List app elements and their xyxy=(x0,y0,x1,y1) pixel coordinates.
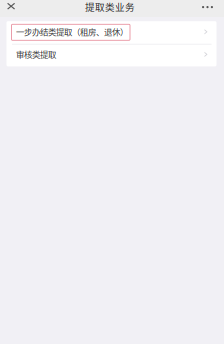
button[interactable]: Close xyxy=(0,0,21,17)
button[interactable]: More xyxy=(196,2,224,15)
staticText: 审核类提取 xyxy=(16,48,56,60)
staticText: 提取类业务 xyxy=(85,0,135,13)
staticText: 一步办结类提取（租房、退休） xyxy=(16,25,128,38)
button[interactable]: 审核类提取 xyxy=(6,44,216,66)
button[interactable]: 一步办结类提取（租房、退休） xyxy=(6,21,216,44)
